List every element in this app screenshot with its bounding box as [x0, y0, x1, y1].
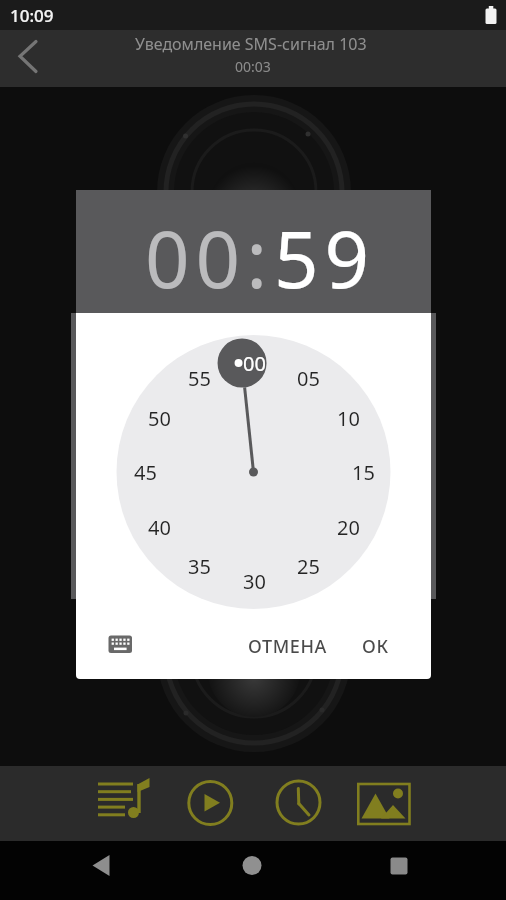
staticText: 35: [188, 553, 211, 580]
staticText: 00:: [145, 205, 274, 311]
staticText: Уведомление SMS-сигнал 103: [135, 33, 367, 55]
button[interactable]: [98, 624, 142, 666]
staticText: 10: [337, 405, 360, 432]
button[interactable]: ОТМЕНА: [242, 626, 332, 666]
button[interactable]: [77, 843, 125, 891]
button[interactable]: [6, 36, 50, 82]
staticText: 10:09: [10, 4, 54, 27]
staticText: ОТМЕНА: [248, 634, 327, 659]
staticText: 50: [148, 405, 171, 432]
button[interactable]: ОК: [351, 626, 399, 666]
staticText: 00:03: [235, 57, 271, 76]
staticText: ОК: [362, 634, 389, 659]
staticText: 30: [243, 568, 266, 595]
staticText: 15: [352, 459, 375, 486]
staticText: 45: [134, 459, 157, 486]
button[interactable]: [95, 774, 153, 832]
staticText: 05: [297, 365, 320, 392]
button[interactable]: [269, 774, 327, 832]
staticText: 25: [297, 553, 320, 580]
button[interactable]: [228, 843, 276, 891]
button[interactable]: [355, 774, 413, 832]
staticText: 20: [337, 514, 360, 541]
staticText: 00: [243, 350, 266, 377]
staticText: 40: [148, 514, 171, 541]
staticText: 59: [274, 205, 376, 311]
staticText: 55: [188, 365, 211, 392]
button[interactable]: [375, 843, 423, 891]
button[interactable]: [181, 774, 239, 832]
